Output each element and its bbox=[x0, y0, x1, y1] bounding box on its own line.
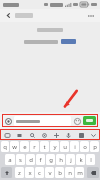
button[interactable]: o bbox=[80, 141, 89, 152]
button[interactable]: Emoji bbox=[73, 117, 81, 125]
button[interactable]: e bbox=[20, 141, 29, 152]
button[interactable]: p bbox=[90, 141, 99, 152]
button[interactable]: j bbox=[66, 154, 75, 165]
button[interactable]: n bbox=[65, 167, 74, 178]
button[interactable]: h bbox=[56, 154, 65, 165]
button[interactable]: r bbox=[30, 141, 39, 152]
staticText: s bbox=[19, 156, 22, 164]
button[interactable]: Voice bbox=[64, 131, 72, 139]
button[interactable]: Settings bbox=[40, 131, 48, 139]
staticText: h bbox=[59, 156, 63, 164]
button[interactable]: Gallery bbox=[77, 131, 85, 139]
button[interactable]: g bbox=[46, 154, 55, 165]
button[interactable]: Re-edit bbox=[61, 39, 76, 44]
staticText: f bbox=[39, 156, 42, 164]
staticText: q bbox=[3, 143, 7, 151]
staticText: k bbox=[79, 156, 83, 164]
button[interactable]: a bbox=[5, 154, 15, 165]
button[interactable]: Back bbox=[4, 11, 13, 20]
staticText: n bbox=[68, 169, 72, 177]
button[interactable]: f bbox=[36, 154, 45, 165]
button[interactable] bbox=[83, 116, 96, 125]
staticText: p bbox=[93, 143, 97, 151]
button[interactable]: i bbox=[70, 141, 79, 152]
staticText: w bbox=[12, 143, 17, 151]
button[interactable]: Collapse bbox=[89, 131, 97, 139]
button[interactable]: c bbox=[35, 167, 44, 178]
button[interactable]: Keyboard bbox=[3, 131, 11, 139]
staticText: b bbox=[58, 169, 62, 177]
button[interactable]: t bbox=[40, 141, 49, 152]
staticText: y bbox=[53, 143, 57, 151]
staticText: j bbox=[70, 156, 72, 164]
staticText: u bbox=[63, 143, 67, 151]
staticText: r bbox=[33, 143, 36, 151]
button[interactable]: Theme bbox=[52, 131, 60, 139]
button[interactable]: Clipboard bbox=[15, 131, 23, 139]
button[interactable]: w bbox=[10, 141, 19, 152]
button[interactable]: More options bbox=[86, 11, 96, 21]
button[interactable]: Delete bbox=[87, 167, 99, 178]
staticText: m bbox=[77, 169, 83, 177]
button[interactable]: s bbox=[16, 154, 25, 165]
staticText: a bbox=[8, 156, 12, 164]
button[interactable]: v bbox=[45, 167, 54, 178]
staticText: x bbox=[28, 169, 32, 177]
staticText: g bbox=[49, 156, 53, 164]
staticText: l bbox=[90, 156, 92, 164]
button[interactable]: z bbox=[15, 167, 24, 178]
staticText: d bbox=[29, 156, 33, 164]
staticText: v bbox=[48, 169, 52, 177]
staticText: z bbox=[18, 169, 21, 177]
button[interactable] bbox=[14, 116, 71, 126]
button[interactable]: u bbox=[60, 141, 69, 152]
button[interactable]: x bbox=[25, 167, 34, 178]
staticText: t bbox=[43, 143, 46, 151]
button[interactable]: l bbox=[86, 154, 95, 165]
button[interactable]: q bbox=[1, 141, 9, 152]
staticText: o bbox=[83, 143, 87, 151]
button[interactable]: k bbox=[76, 154, 85, 165]
staticText: c bbox=[38, 169, 41, 177]
button[interactable]: m bbox=[75, 167, 84, 178]
button[interactable]: y bbox=[50, 141, 59, 152]
staticText: i bbox=[74, 143, 76, 151]
button[interactable]: b bbox=[55, 167, 64, 178]
button[interactable]: Search bbox=[28, 131, 36, 139]
button[interactable]: Voice input bbox=[4, 117, 12, 125]
button[interactable]: Shift bbox=[1, 167, 12, 178]
staticText: e bbox=[23, 143, 27, 151]
button[interactable]: d bbox=[26, 154, 35, 165]
